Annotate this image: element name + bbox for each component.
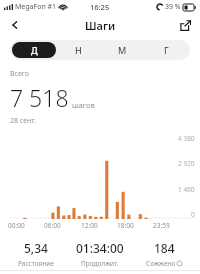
staticText: 18:00 (117, 221, 134, 230)
staticText: 184 (154, 240, 175, 256)
staticText: 2 920 (178, 159, 195, 168)
staticText: 12:00 (81, 221, 98, 230)
button[interactable]: 01:34:00 (68, 238, 132, 270)
staticText: 16:25 (90, 2, 110, 12)
staticText: шагов (72, 100, 95, 110)
staticText: 5,34 (24, 240, 48, 256)
staticText: Продолжит. (81, 259, 119, 268)
button[interactable]: Share (175, 15, 195, 35)
button[interactable]: Н (56, 42, 100, 58)
staticText: Н (75, 44, 82, 56)
staticText: 01:34:00 (76, 240, 124, 256)
staticText: 28 сент. (10, 116, 37, 126)
button[interactable]: 5,34 (4, 238, 68, 270)
button[interactable]: 184 (132, 238, 196, 270)
staticText: М (118, 44, 127, 56)
staticText: Д (31, 44, 38, 56)
staticText: 39 % (165, 2, 181, 12)
staticText: 4 380 (178, 134, 195, 143)
staticText: MegaFon #1 (15, 2, 57, 12)
staticText: Расстояние (18, 259, 54, 268)
staticText: 1 460 (178, 185, 195, 194)
staticText: 7 518 (10, 82, 69, 113)
staticText: Всего (10, 69, 29, 79)
staticText: 00:00 (8, 221, 25, 230)
staticText: Сожжено (146, 259, 176, 268)
staticText: Г (164, 44, 169, 56)
staticText: 23:59 (153, 221, 170, 230)
staticText: Шаги (85, 18, 116, 33)
staticText: 06:00 (44, 221, 61, 230)
button[interactable]: М (100, 42, 144, 58)
button[interactable]: Д (12, 42, 56, 58)
button[interactable]: Г (144, 42, 188, 58)
button[interactable]: Back (5, 15, 25, 35)
staticText: 0 (191, 210, 195, 219)
